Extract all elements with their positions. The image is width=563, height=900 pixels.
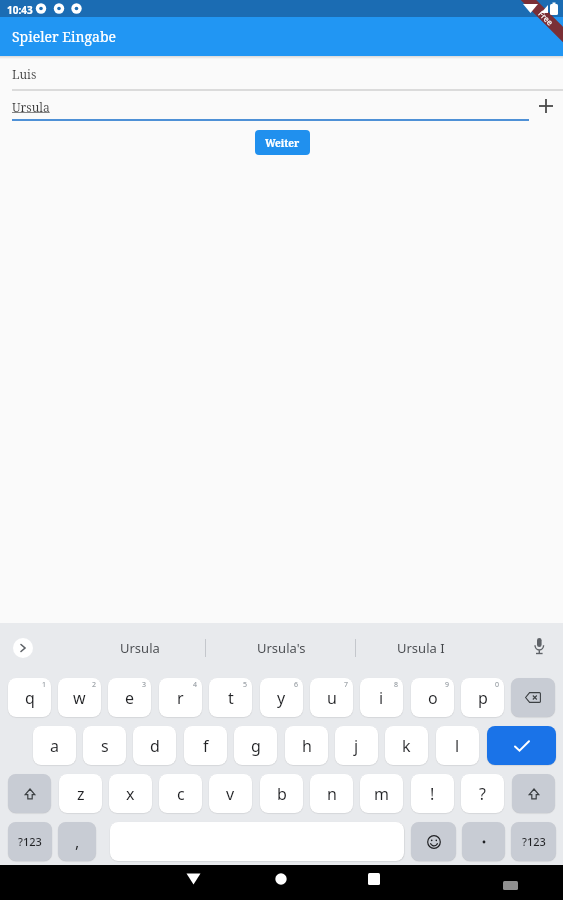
staticText: ? [479,783,486,805]
button[interactable]: j [335,726,378,765]
button[interactable]: c [159,774,202,813]
button[interactable]: g [234,726,277,765]
staticText: a [50,735,59,757]
button[interactable]: ! [411,774,454,813]
button[interactable]: n [310,774,353,813]
button[interactable]: v [209,774,252,813]
staticText: x [126,783,135,805]
button[interactable]: , [58,822,96,861]
staticText: , [75,831,80,853]
button[interactable]: w [58,678,101,717]
button[interactable]: u [310,678,353,717]
button[interactable]: m [360,774,403,813]
staticText: o [428,687,438,709]
button[interactable]: e [108,678,151,717]
staticText: c [177,783,185,805]
staticText: i [379,687,384,709]
button[interactable] [411,822,456,861]
button[interactable]: o [411,678,454,717]
button[interactable]: ?123 [511,822,556,861]
button[interactable] [13,638,33,658]
staticText: t [228,687,234,709]
button[interactable]: x [109,774,152,813]
button[interactable]: Weiter [255,130,310,155]
staticText: Spieler Eingabe [12,27,116,46]
staticText: f [203,735,209,757]
button[interactable]: p [461,678,504,717]
staticText: 8 [394,680,399,690]
button[interactable] [462,822,505,861]
staticText: e [125,687,135,709]
button[interactable] [512,774,555,813]
staticText: 7 [344,680,349,690]
button[interactable]: Ursula's [221,634,341,662]
button[interactable]: Ursula [80,634,200,662]
staticText: j [354,735,359,757]
staticText: r [177,687,184,709]
staticText: 0 [495,680,500,690]
staticText: ?123 [18,834,42,849]
staticText: u [327,687,337,709]
staticText: h [302,735,312,757]
button[interactable]: s [83,726,126,765]
button[interactable]: l [436,726,479,765]
staticText: Luis [12,66,37,82]
staticText: q [25,687,35,709]
button[interactable] [487,726,556,765]
staticText: Ursula's [257,639,306,657]
button[interactable] [511,678,555,717]
staticText: z [77,783,85,805]
button[interactable] [8,774,51,813]
button[interactable]: f [184,726,227,765]
button[interactable]: ? [461,774,504,813]
staticText: ! [430,783,435,805]
staticText: 4 [193,680,198,690]
button[interactable]: r [159,678,202,717]
staticText: p [478,687,488,709]
staticText: m [374,783,389,805]
staticText: Ursula I [397,639,445,657]
button[interactable]: i [360,678,403,717]
button[interactable] [187,865,375,900]
staticText: b [277,783,287,805]
button[interactable]: k [385,726,428,765]
button[interactable] [539,99,553,113]
staticText: d [150,735,160,757]
button[interactable]: Ursula I [361,634,481,662]
staticText: w [73,687,86,709]
button[interactable]: h [285,726,328,765]
staticText: 5 [243,680,248,690]
staticText: 10:43 [7,3,33,17]
button[interactable]: t [209,678,252,717]
staticText: Free [536,8,556,28]
staticText: Ursula [12,99,50,115]
staticText: s [101,735,109,757]
staticText: ?123 [522,834,546,849]
staticText: l [455,735,460,757]
staticText: y [277,687,286,709]
staticText: 1 [42,680,47,690]
button[interactable] [533,638,545,658]
button[interactable]: ?123 [8,822,52,861]
staticText: n [327,783,337,805]
staticText: k [402,735,411,757]
staticText: v [226,783,235,805]
button[interactable]: q [8,678,51,717]
button[interactable]: b [260,774,303,813]
staticText: 3 [142,680,147,690]
button[interactable] [375,865,563,900]
staticText: 2 [92,680,97,690]
staticText: Ursula [120,639,160,657]
staticText: g [251,735,261,757]
staticText: 9 [445,680,450,690]
button[interactable]: a [33,726,76,765]
button[interactable]: z [59,774,102,813]
staticText: 6 [294,680,299,690]
button[interactable]: y [260,678,303,717]
staticText: Weiter [265,136,300,150]
button[interactable]: d [133,726,176,765]
